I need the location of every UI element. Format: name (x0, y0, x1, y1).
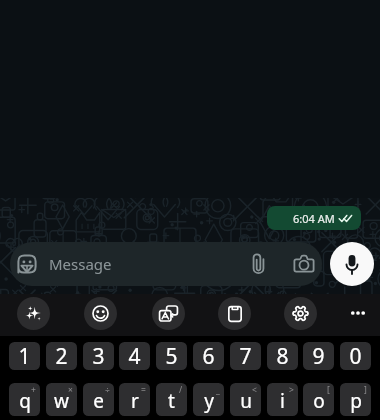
staticText: y (204, 388, 214, 414)
staticText: = (141, 384, 146, 396)
staticText: < (252, 384, 257, 396)
staticText: Message (49, 254, 112, 274)
button[interactable]: Emoji (84, 297, 117, 330)
staticText: 6 (202, 342, 215, 370)
button[interactable]: q (9, 383, 40, 416)
button[interactable]: 1 (9, 342, 40, 370)
staticText: o (313, 388, 325, 414)
staticText: 5 (165, 342, 178, 370)
staticText: × (68, 384, 73, 396)
button[interactable]: 6:04 AM (267, 206, 361, 230)
button[interactable]: Clipboard (218, 297, 251, 330)
staticText: ] (364, 384, 367, 396)
button[interactable]: e (83, 383, 114, 416)
button[interactable]: 7 (230, 342, 261, 370)
staticText: 3 (92, 342, 105, 370)
staticText: w (54, 388, 69, 414)
staticText: + (31, 384, 36, 396)
staticText: ÷ (105, 384, 110, 396)
staticText: 4 (128, 342, 141, 370)
button[interactable]: Stickers (152, 297, 185, 330)
button[interactable]: Attach (239, 245, 277, 283)
staticText: 2 (55, 342, 68, 370)
staticText: [ (327, 384, 330, 396)
staticText: r (131, 388, 139, 414)
button[interactable]: 4 (119, 342, 150, 370)
button[interactable]: r (119, 383, 150, 416)
button[interactable]: AI assistant (17, 297, 50, 330)
button[interactable]: 0 (340, 342, 371, 370)
staticText: e (93, 388, 104, 414)
staticText: t (168, 388, 175, 414)
staticText: 9 (312, 342, 325, 370)
staticText: p (350, 388, 362, 414)
button[interactable]: Settings (284, 297, 317, 330)
button[interactable]: Camera (285, 245, 322, 283)
button[interactable]: w (46, 383, 77, 416)
button[interactable]: 3 (83, 342, 114, 370)
button[interactable]: y (193, 383, 224, 416)
button[interactable]: 2 (46, 342, 77, 370)
button[interactable]: Record voice message (330, 242, 374, 286)
staticText: 1 (18, 342, 31, 370)
staticText: / (179, 384, 183, 396)
staticText: 0 (349, 342, 362, 370)
button[interactable]: 5 (156, 342, 187, 370)
button[interactable]: Message (10, 242, 322, 286)
staticText: > (289, 384, 294, 396)
button[interactable]: 9 (303, 342, 334, 370)
button[interactable]: 8 (267, 342, 298, 370)
button[interactable]: More options (341, 296, 374, 329)
staticText: 7 (239, 342, 252, 370)
button[interactable]: t (156, 383, 187, 416)
staticText: u (240, 388, 252, 414)
staticText: 6:04 AM (293, 211, 335, 226)
button[interactable]: u (230, 383, 261, 416)
button[interactable]: o (303, 383, 334, 416)
staticText: q (19, 388, 31, 414)
button[interactable]: i (267, 383, 298, 416)
button[interactable]: p (340, 383, 371, 416)
button[interactable]: 6 (193, 342, 224, 370)
staticText: _ (216, 384, 220, 396)
staticText: i (280, 388, 285, 414)
staticText: 8 (276, 342, 289, 370)
